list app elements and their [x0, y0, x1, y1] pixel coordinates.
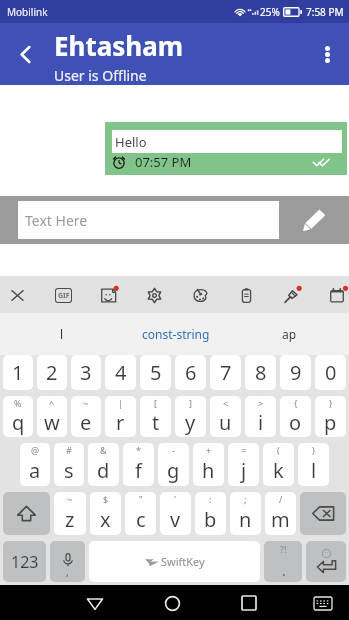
staticText: 8: [255, 359, 267, 386]
staticText: $: [103, 493, 109, 505]
button[interactable]: GIF: [47, 279, 79, 311]
button[interactable]: |: [105, 396, 136, 437]
staticText: l: [60, 326, 64, 342]
staticText: h: [202, 457, 215, 484]
button[interactable]: 0: [315, 355, 346, 390]
staticText: 2: [46, 359, 58, 386]
staticText: =: [241, 444, 247, 456]
staticText: 25%: [260, 5, 280, 19]
button[interactable]: Clipboard: [230, 279, 262, 311]
button[interactable]: Back: [0, 23, 50, 85]
staticText: r: [116, 409, 125, 436]
button[interactable]: -: [158, 443, 189, 486]
button[interactable]: Enter: [306, 541, 346, 582]
button[interactable]: {: [280, 396, 311, 437]
button[interactable]: Space: [89, 541, 260, 582]
button[interactable]: }: [315, 396, 346, 437]
button[interactable]: 3: [71, 355, 101, 390]
button[interactable]: &: [88, 443, 119, 486]
staticText: 6: [185, 359, 197, 386]
button[interactable]: Stickers: [92, 279, 124, 311]
staticText: o: [289, 409, 302, 436]
button[interactable]: Hide keyboard: [306, 586, 340, 620]
staticText: /: [279, 493, 283, 505]
button[interactable]: /: [265, 492, 296, 535]
button[interactable]: *: [123, 443, 154, 486]
button[interactable]: l: [0, 313, 123, 355]
button[interactable]: :: [195, 492, 226, 535]
button[interactable]: 2: [37, 355, 67, 390]
button[interactable]: Send message: [279, 196, 349, 244]
button[interactable]: Back: [78, 586, 112, 620]
staticText: ?!: [280, 543, 287, 555]
button[interactable]: ]: [175, 396, 206, 437]
button[interactable]: >: [245, 396, 276, 437]
staticText: f: [135, 457, 142, 484]
button[interactable]: ): [298, 443, 329, 486]
button[interactable]: 7: [210, 355, 241, 390]
button[interactable]: +: [193, 443, 224, 486]
button[interactable]: Backspace: [300, 492, 346, 535]
staticText: |: [118, 397, 123, 409]
button[interactable]: ': [160, 492, 191, 535]
button[interactable]: Voice input: [50, 541, 85, 582]
staticText: q: [12, 409, 25, 436]
button[interactable]: %: [3, 396, 33, 437]
button[interactable]: #: [54, 443, 84, 486]
staticText: i: [258, 409, 264, 436]
staticText: ,: [66, 564, 69, 579]
button[interactable]: More options: [305, 23, 349, 85]
staticText: GIF: [58, 291, 70, 301]
staticText: ": [139, 493, 143, 505]
staticText: ~: [67, 493, 73, 505]
staticText: Ehtasham: [54, 28, 184, 63]
button[interactable]: ": [125, 492, 156, 535]
staticText: w: [44, 409, 60, 436]
button[interactable]: (: [263, 443, 294, 486]
button[interactable]: Themes: [184, 279, 216, 311]
staticText: u: [219, 409, 232, 436]
button[interactable]: $: [90, 492, 121, 535]
button[interactable]: 5: [140, 355, 171, 390]
button[interactable]: =: [228, 443, 259, 486]
button[interactable]: ?!: [264, 541, 302, 582]
staticText: Hello: [115, 133, 147, 151]
staticText: k: [273, 457, 284, 484]
staticText: x: [100, 506, 111, 533]
button[interactable]: 123: [3, 541, 46, 582]
button[interactable]: 8: [245, 355, 276, 390]
staticText: ): [312, 444, 315, 456]
button[interactable]: Pin: [275, 279, 307, 311]
button[interactable]: 1: [3, 355, 33, 390]
button[interactable]: @: [20, 443, 50, 486]
button[interactable]: Home: [155, 586, 189, 620]
button[interactable]: Recents: [232, 586, 266, 620]
staticText: 4: [115, 359, 127, 386]
staticText: m: [271, 506, 290, 533]
button[interactable]: <: [210, 396, 241, 437]
button[interactable]: Close: [1, 279, 33, 311]
button[interactable]: ~: [71, 396, 101, 437]
staticText: +: [206, 444, 212, 456]
staticText: 07:57 PM: [135, 153, 192, 170]
button[interactable]: 6: [175, 355, 206, 390]
button[interactable]: Settings: [138, 279, 170, 311]
button[interactable]: [: [140, 396, 171, 437]
button[interactable]: ;: [230, 492, 261, 535]
button[interactable]: Calendar: [321, 279, 349, 311]
button[interactable]: ^: [37, 396, 67, 437]
staticText: 0: [325, 359, 337, 386]
button[interactable]: ~: [54, 492, 86, 535]
staticText: User is Offline: [54, 66, 147, 85]
button[interactable]: const-string: [123, 313, 229, 355]
staticText: b: [204, 506, 217, 533]
staticText: const-string: [142, 326, 210, 342]
button[interactable]: Text Here: [18, 201, 279, 239]
staticText: s: [64, 457, 74, 484]
staticText: {: [294, 397, 298, 409]
button[interactable]: Shift: [3, 492, 50, 535]
button[interactable]: 9: [280, 355, 311, 390]
staticText: l: [311, 457, 317, 484]
button[interactable]: ap: [229, 313, 349, 355]
button[interactable]: 4: [105, 355, 136, 390]
